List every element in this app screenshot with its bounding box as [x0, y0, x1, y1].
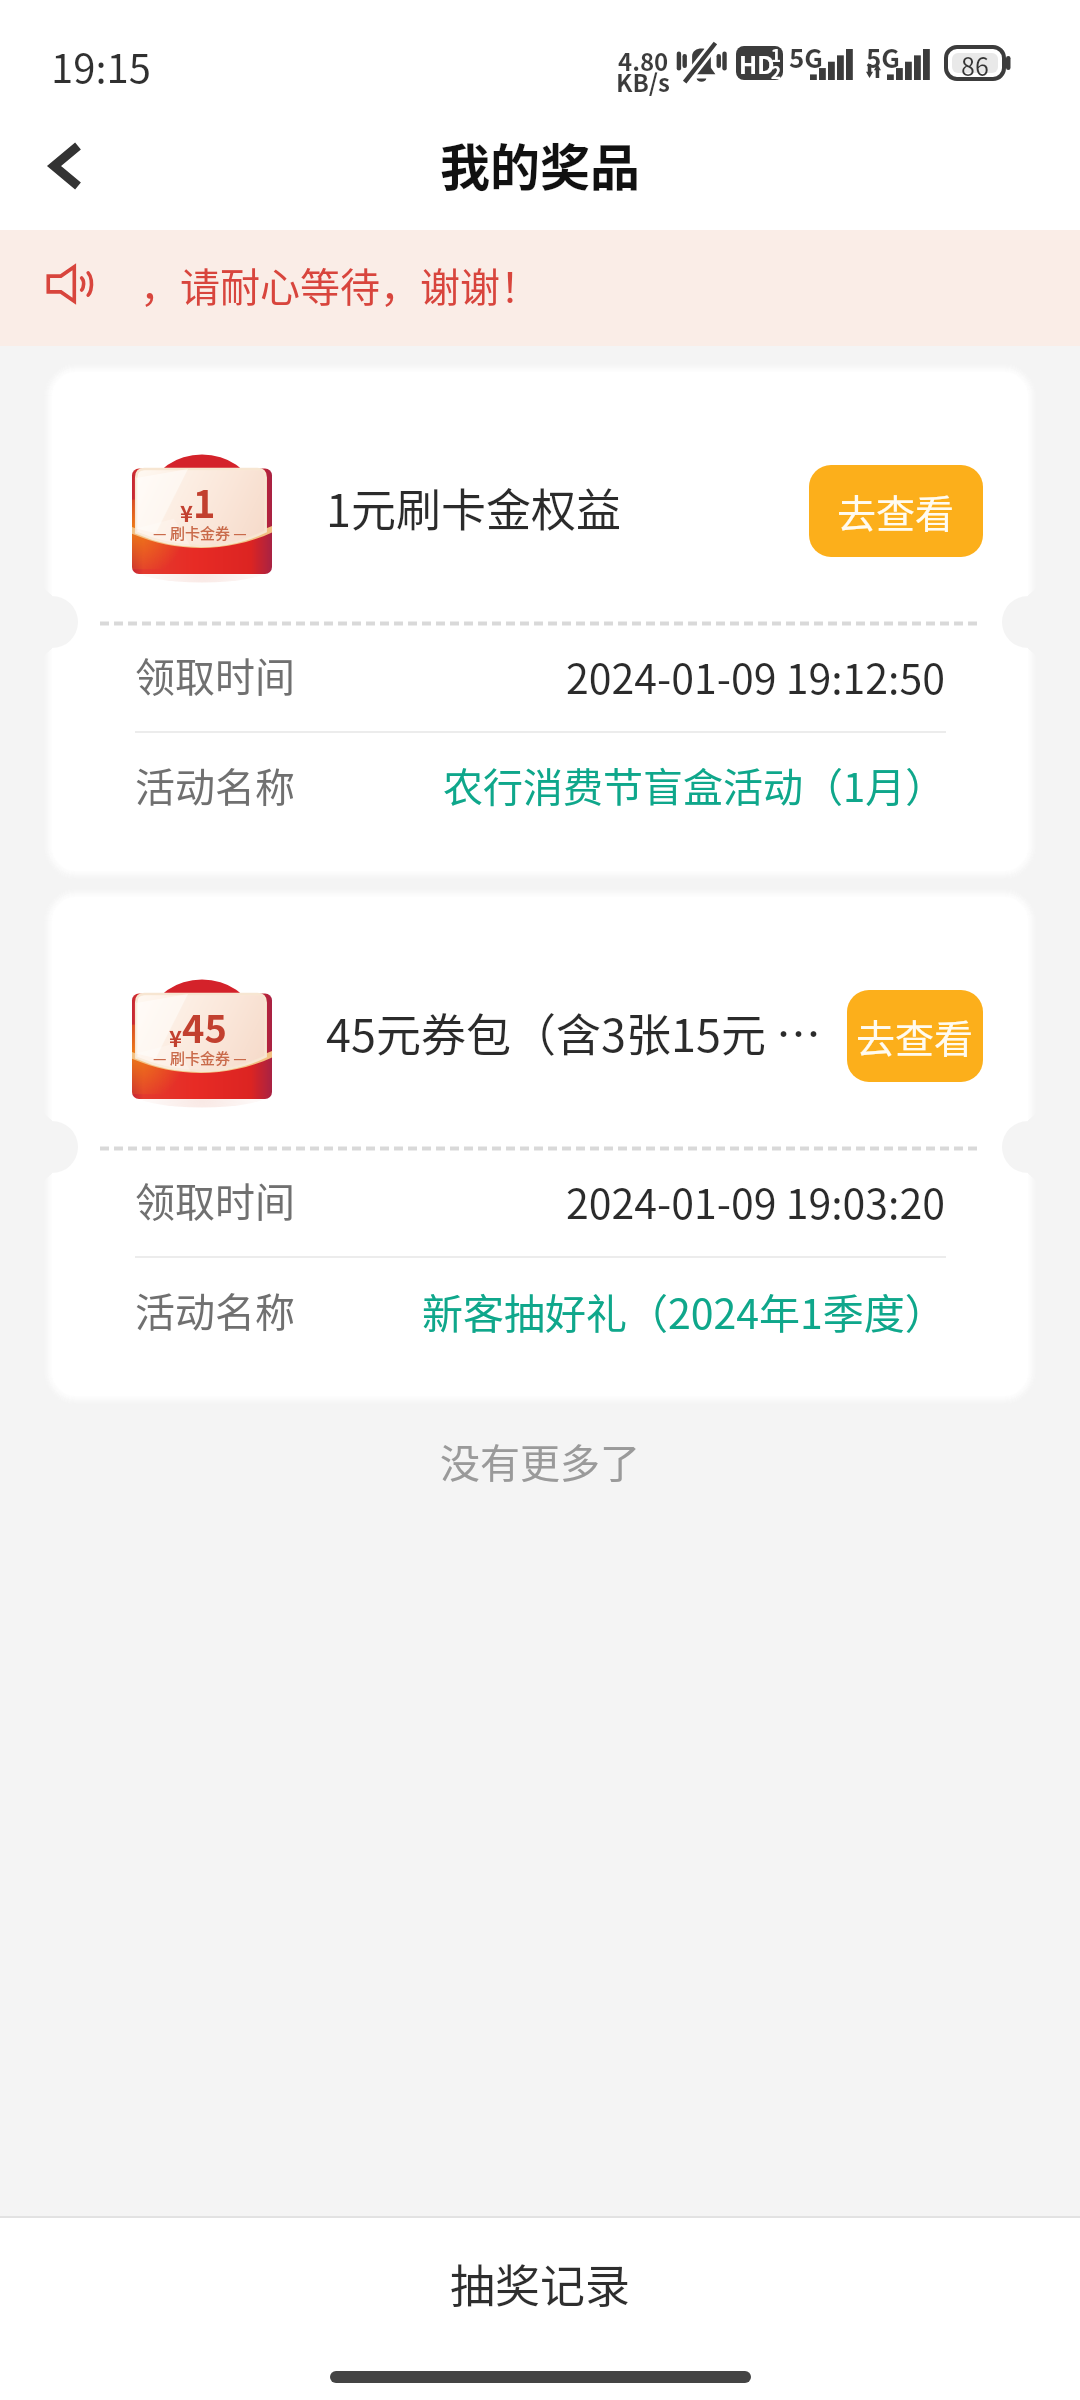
staticText: 2024-01-09 19:03:20 [566, 1171, 946, 1230]
staticText: — 刷卡金券 — [153, 1047, 247, 1069]
staticText: 去查看 [837, 483, 955, 539]
staticText: ，请耐心等待，谢谢！ [140, 256, 540, 314]
staticText: 抽奖记录 [450, 2251, 631, 2316]
staticText: 没有更多了 [440, 1432, 640, 1490]
button[interactable]: ¥ [52, 372, 1028, 871]
staticText: ¥ [169, 1021, 182, 1053]
staticText: 我的奖品 [440, 128, 640, 200]
staticText: KB/s [616, 64, 670, 99]
button[interactable]: Back [12, 107, 130, 224]
staticText: 1 [193, 474, 216, 529]
staticText: 5G [866, 38, 900, 74]
button[interactable]: 去查看 [847, 990, 983, 1082]
staticText: 新客抽好礼（2024年1季度） [422, 1281, 946, 1340]
staticText: — 刷卡金券 — [153, 522, 247, 544]
staticText: 86 [961, 47, 989, 79]
staticText: 活动名称 [135, 1281, 295, 1339]
staticText: 1元刷卡金权益 [326, 475, 656, 540]
staticText: 45元券包（含3张15元 … [326, 1000, 826, 1065]
staticText: 19:15 [51, 37, 151, 95]
staticText: HD [739, 46, 775, 80]
button[interactable]: 去查看 [809, 465, 983, 557]
staticText: 1 [771, 42, 782, 67]
button[interactable]: 抽奖记录 [0, 2218, 1080, 2400]
staticText: 5G [789, 38, 823, 74]
staticText: 4.80 [618, 43, 669, 78]
staticText: 2024-01-09 19:12:50 [566, 646, 946, 705]
staticText: 活动名称 [135, 756, 295, 814]
staticText: 45 [182, 999, 227, 1054]
staticText: ¥ [180, 496, 193, 528]
staticText: 2 [771, 59, 782, 84]
button[interactable]: ¥ [52, 897, 1028, 1396]
staticText: 领取时间 [135, 1171, 295, 1229]
staticText: 去查看 [856, 1008, 974, 1064]
staticText: 领取时间 [135, 646, 295, 704]
staticText: 农行消费节盲盒活动（1月） [443, 756, 946, 814]
